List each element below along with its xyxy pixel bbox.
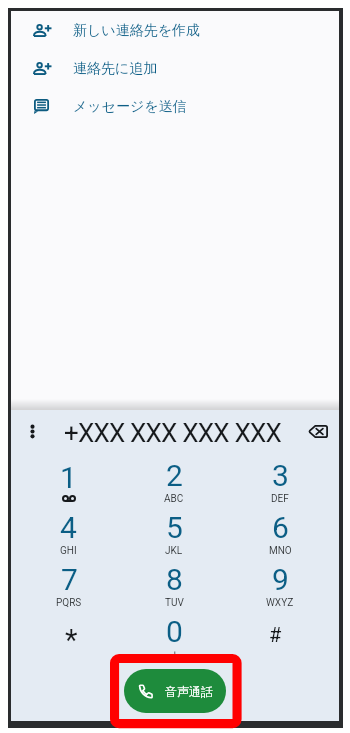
staticText: 0 bbox=[166, 614, 183, 649]
staticText: 新しい連絡先を作成 bbox=[73, 22, 200, 40]
button[interactable]: 0 bbox=[121, 608, 227, 660]
staticText: +XXX XXX XXX XXX bbox=[64, 418, 281, 448]
staticText: PQRS bbox=[56, 597, 82, 609]
staticText: 音声通話 bbox=[165, 684, 213, 699]
staticText: 7 bbox=[61, 562, 78, 597]
button[interactable]: 連絡先に追加 bbox=[11, 49, 339, 87]
staticText: 5 bbox=[166, 510, 183, 545]
staticText: 4 bbox=[60, 510, 77, 545]
button[interactable]: 音声通話 bbox=[124, 669, 226, 713]
button[interactable]: 2 bbox=[121, 452, 227, 504]
staticText: WXYZ bbox=[266, 597, 294, 609]
button[interactable]: # bbox=[227, 608, 333, 660]
button[interactable]: More options bbox=[24, 423, 41, 440]
staticText: * bbox=[65, 623, 78, 657]
staticText: 9 bbox=[272, 562, 289, 597]
button[interactable]: 新しい連絡先を作成 bbox=[11, 11, 339, 49]
staticText: メッセージを送信 bbox=[73, 98, 187, 116]
button[interactable]: メッセージを送信 bbox=[11, 87, 339, 125]
staticText: 8 bbox=[166, 562, 183, 597]
button[interactable]: Backspace bbox=[309, 425, 328, 438]
button[interactable]: 1 bbox=[16, 452, 121, 504]
button[interactable]: 5 bbox=[121, 504, 227, 556]
staticText: + bbox=[172, 649, 178, 661]
staticText: DEF bbox=[271, 493, 289, 505]
button[interactable]: 8 bbox=[121, 556, 227, 608]
staticText: GHI bbox=[60, 545, 77, 557]
staticText: # bbox=[269, 623, 282, 646]
button[interactable]: * bbox=[16, 608, 121, 660]
staticText: 6 bbox=[272, 510, 289, 545]
staticText: 連絡先に追加 bbox=[73, 60, 158, 78]
button[interactable]: 7 bbox=[16, 556, 121, 608]
staticText: 2 bbox=[166, 458, 183, 493]
staticText: TUV bbox=[165, 597, 184, 609]
button[interactable]: 6 bbox=[227, 504, 333, 556]
button[interactable]: 4 bbox=[16, 504, 121, 556]
button[interactable]: 9 bbox=[227, 556, 333, 608]
staticText: 1 bbox=[60, 460, 77, 495]
staticText: JKL bbox=[165, 545, 183, 557]
button[interactable]: 3 bbox=[227, 452, 333, 504]
staticText: 3 bbox=[272, 458, 289, 493]
staticText: MNO bbox=[269, 545, 292, 557]
staticText: ABC bbox=[164, 493, 184, 505]
